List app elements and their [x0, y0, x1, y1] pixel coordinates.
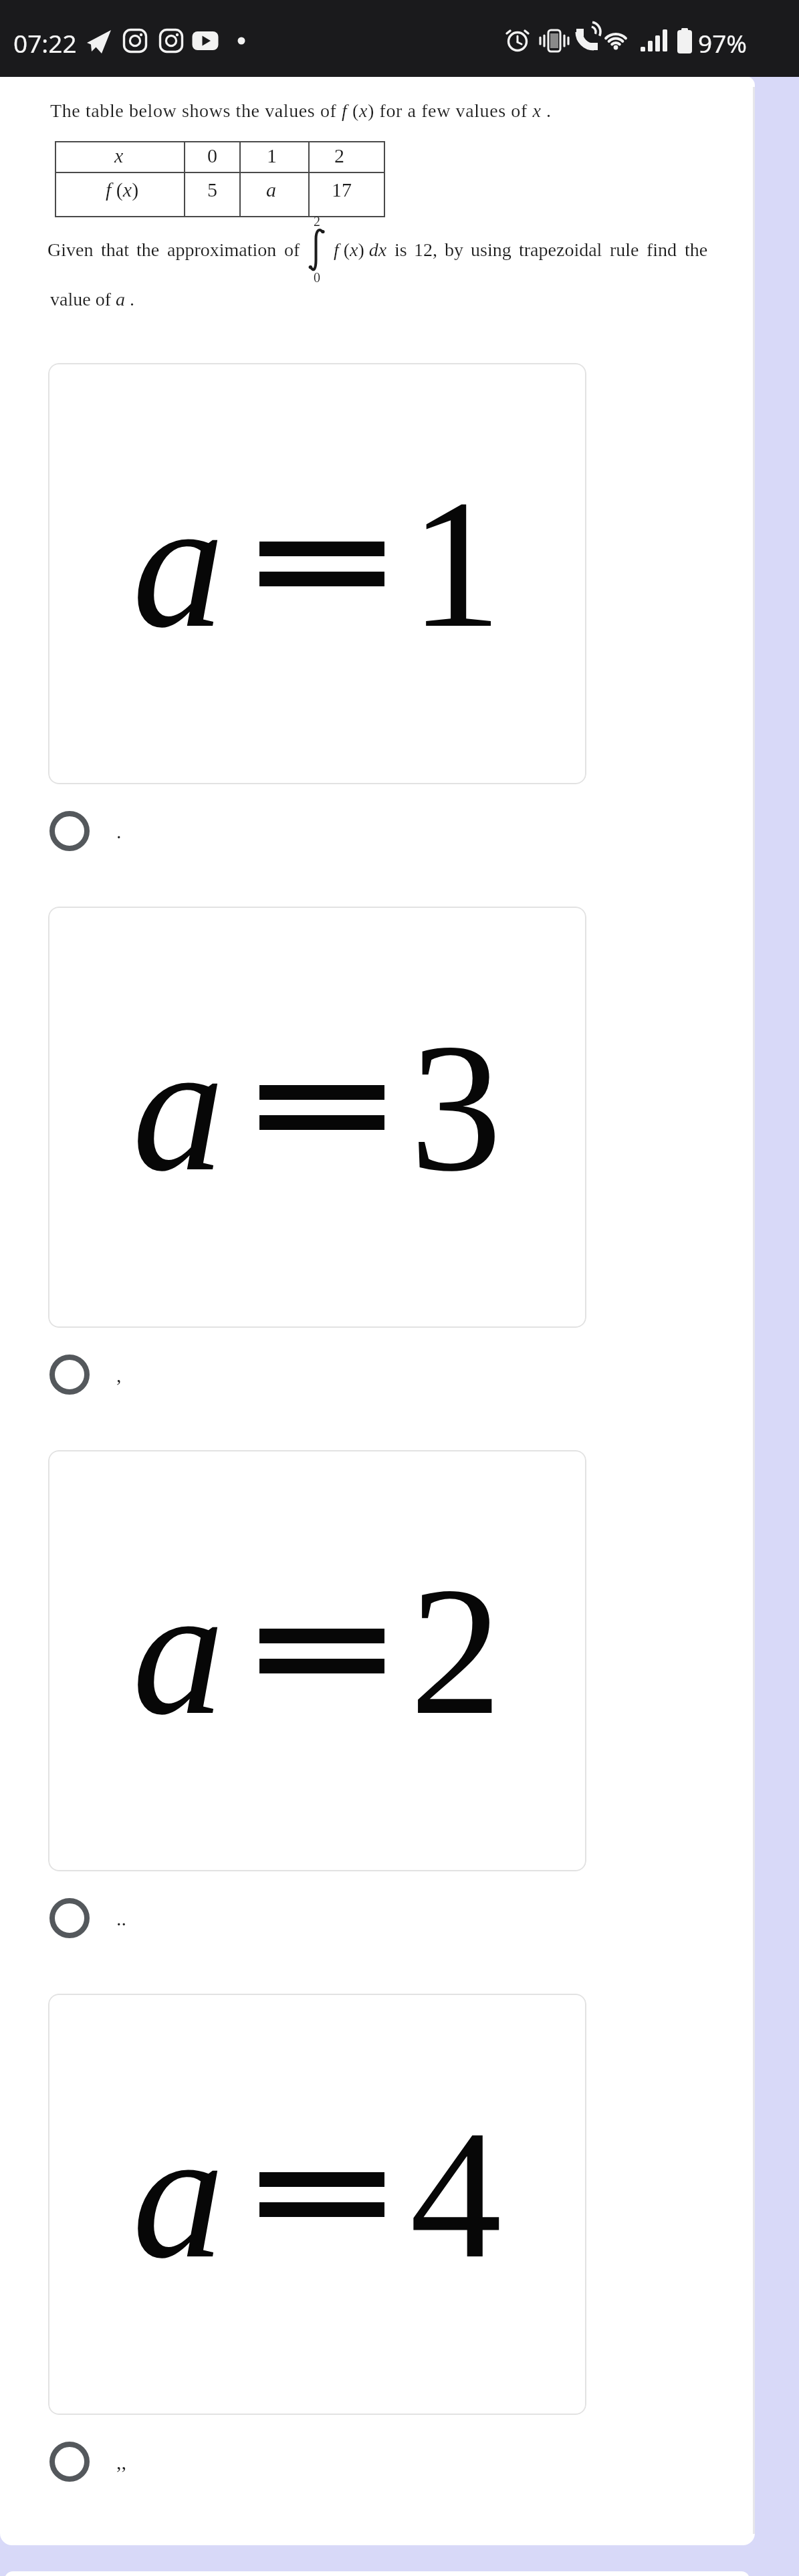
button[interactable]: a — [48, 363, 586, 784]
staticText: The table below shows the values of f (x… — [50, 100, 552, 121]
staticText: 2 — [314, 214, 320, 229]
staticText: a — [132, 1549, 225, 1753]
staticText: rule — [610, 239, 639, 260]
staticText: a — [132, 2093, 225, 2297]
staticText: the — [685, 239, 708, 260]
staticText: . — [116, 820, 122, 842]
staticText: 17 — [332, 179, 352, 201]
staticText: a — [132, 1006, 225, 1209]
staticText: 5 — [207, 179, 217, 201]
staticText: 2 — [334, 144, 344, 166]
staticText: of — [284, 239, 300, 260]
staticText: .. — [116, 1907, 126, 1929]
staticText: 0 — [207, 144, 217, 166]
staticText: 1 — [410, 462, 502, 666]
button[interactable]: a — [48, 1994, 586, 2415]
staticText: , — [116, 1364, 122, 1386]
staticText: that — [101, 239, 129, 260]
staticText: 12, — [414, 239, 437, 260]
staticText: 07:22 — [13, 26, 77, 60]
button[interactable]: ,, — [49, 2442, 126, 2482]
staticText: 2 — [410, 1549, 502, 1753]
button[interactable]: .. — [49, 1898, 126, 1938]
staticText: approximation — [167, 239, 277, 260]
staticText: 0 — [314, 270, 320, 285]
button[interactable]: , — [49, 1355, 122, 1395]
staticText: Given — [47, 239, 94, 260]
staticText: is — [394, 239, 407, 260]
staticText: 1 — [267, 144, 277, 166]
staticText: f (x) dx — [334, 239, 387, 260]
staticText: trapezoidal — [519, 239, 602, 260]
staticText: 4 — [410, 2093, 502, 2297]
staticText: find — [647, 239, 677, 260]
staticText: value of a . — [50, 289, 134, 310]
staticText: f (x) — [106, 179, 139, 201]
staticText: a — [266, 179, 276, 201]
staticText: a — [132, 462, 225, 666]
staticText: ,, — [116, 2451, 126, 2473]
staticText: 97% — [698, 26, 748, 60]
staticText: by — [445, 239, 463, 260]
staticText: the — [136, 239, 160, 260]
staticText: using — [471, 239, 511, 260]
staticText: x — [114, 144, 124, 166]
button[interactable]: a — [48, 907, 586, 1328]
button[interactable]: a — [48, 1450, 586, 1871]
button[interactable]: . — [49, 811, 122, 851]
staticText: 3 — [410, 1006, 502, 1209]
